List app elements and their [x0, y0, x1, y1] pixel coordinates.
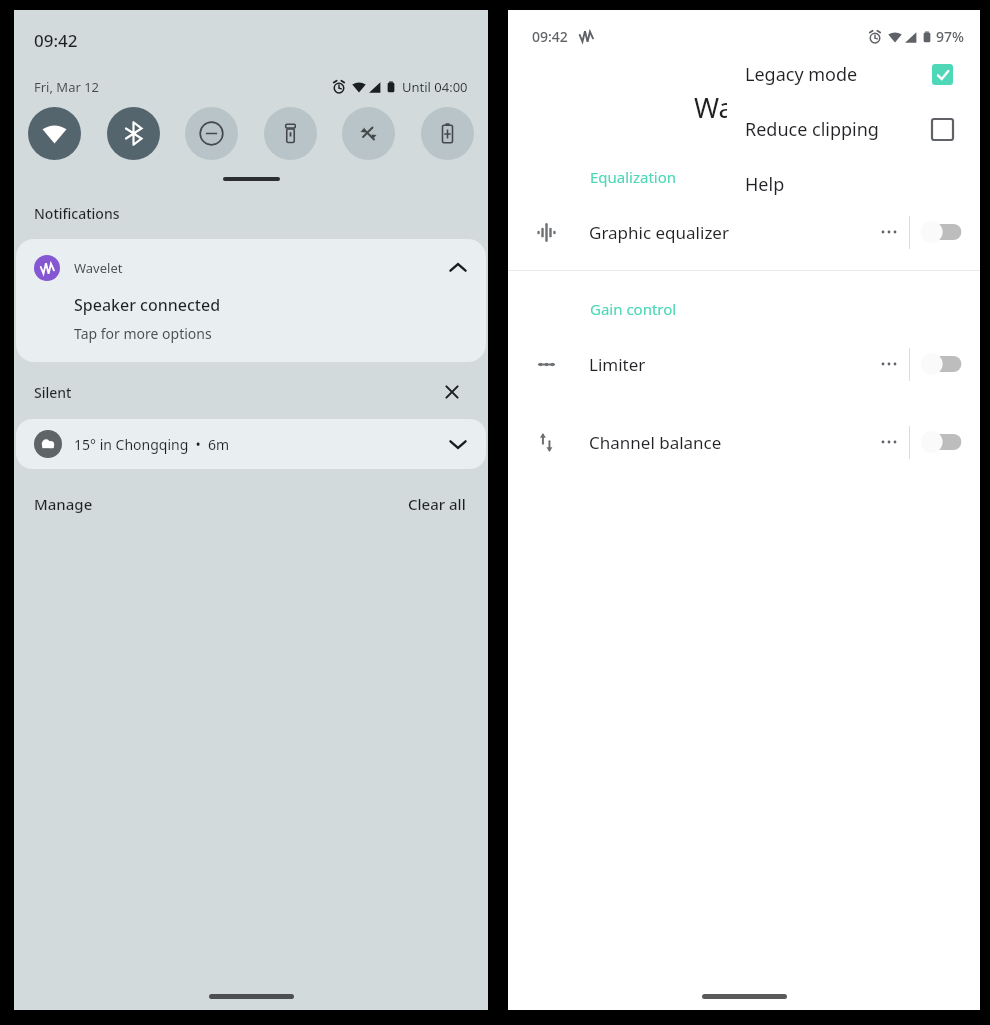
button[interactable]: Wi-Fi [28, 107, 81, 160]
staticText: Speaker connected [74, 294, 221, 316]
button[interactable]: More options for Graphic equalizer [872, 215, 906, 249]
staticText: Notifications [34, 204, 120, 223]
staticText: 09:42 [34, 29, 78, 52]
button[interactable]: Bluetooth [107, 107, 160, 160]
staticText: Graphic equalizer [589, 221, 729, 244]
staticText: Manage [34, 494, 93, 514]
button[interactable]: Toggle Limiter [920, 351, 966, 377]
staticText: Legacy mode [745, 62, 858, 87]
staticText: Equalization [590, 167, 677, 187]
button[interactable]: Auto-rotate [342, 107, 395, 160]
button[interactable]: Clear all [406, 488, 468, 520]
staticText: 15° in Chongqing • 6m [74, 435, 230, 454]
button[interactable]: Do not disturb [185, 107, 238, 160]
staticText: Wavelet [74, 259, 123, 277]
button[interactable]: Wavelet [16, 239, 486, 362]
staticText: Tap for more options [74, 324, 212, 343]
staticText: Reduce clipping [745, 117, 879, 142]
staticText: Fri, Mar 12 [34, 78, 100, 96]
staticText: Silent [34, 383, 72, 402]
button[interactable]: Flashlight [264, 107, 317, 160]
button[interactable]: Toggle Graphic equalizer [920, 219, 966, 245]
staticText: Help [745, 172, 785, 197]
staticText: Clear all [408, 494, 466, 514]
button[interactable]: Limiter [508, 342, 980, 386]
button[interactable]: Help [727, 157, 969, 212]
button[interactable]: Reduce clipping [727, 102, 969, 157]
button[interactable]: Clear silent notifications [438, 378, 466, 406]
button[interactable]: Legacy mode [727, 47, 969, 102]
button[interactable]: More options for Limiter [872, 347, 906, 381]
button[interactable]: Channel balance [508, 420, 980, 464]
staticText: 09:42 [532, 27, 568, 46]
staticText: 97% [936, 27, 964, 46]
staticText: Until 04:00 [402, 78, 468, 96]
button[interactable]: Battery saver [421, 107, 474, 160]
staticText: Channel balance [589, 431, 722, 454]
button[interactable]: More options for Channel balance [872, 425, 906, 459]
button[interactable]: Manage [32, 488, 95, 520]
button[interactable]: 15° in Chongqing • 6m [16, 419, 486, 469]
button[interactable]: Expand notification [444, 430, 472, 458]
staticText: Gain control [590, 299, 677, 319]
button[interactable]: Toggle Channel balance [920, 429, 966, 455]
staticText: Wavelet [694, 89, 795, 126]
staticText: Limiter [589, 353, 646, 376]
button[interactable]: Collapse notification [444, 254, 472, 282]
button[interactable]: Graphic equalizer [508, 210, 980, 254]
